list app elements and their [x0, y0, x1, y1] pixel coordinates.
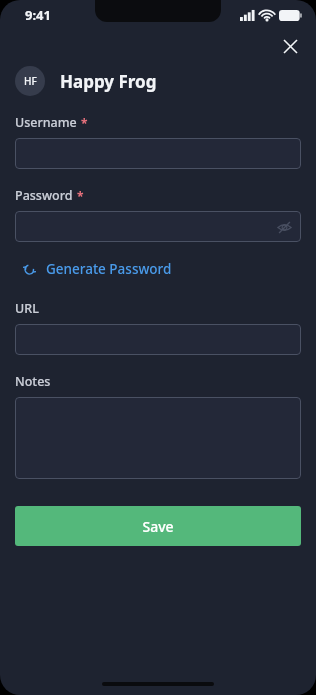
staticText: Save	[142, 517, 174, 536]
button[interactable]: Show password	[15, 211, 301, 242]
staticText: Generate Password	[46, 260, 172, 278]
button[interactable]: Show password	[272, 215, 296, 239]
staticText: Password	[15, 187, 73, 204]
button[interactable]	[15, 397, 301, 479]
button[interactable]: Close	[274, 30, 306, 62]
staticText: HF	[24, 74, 37, 88]
staticText: Happy Frog	[60, 70, 157, 93]
button[interactable]	[15, 138, 301, 169]
staticText: Notes	[15, 373, 51, 390]
staticText: *	[81, 115, 88, 131]
staticText: *	[77, 188, 84, 204]
staticText: Username	[15, 114, 77, 131]
button[interactable]: Save	[15, 506, 301, 546]
button[interactable]: Generate Password	[21, 256, 174, 282]
button[interactable]	[15, 324, 301, 355]
staticText: 9:41	[25, 6, 51, 24]
staticText: URL	[15, 300, 39, 317]
